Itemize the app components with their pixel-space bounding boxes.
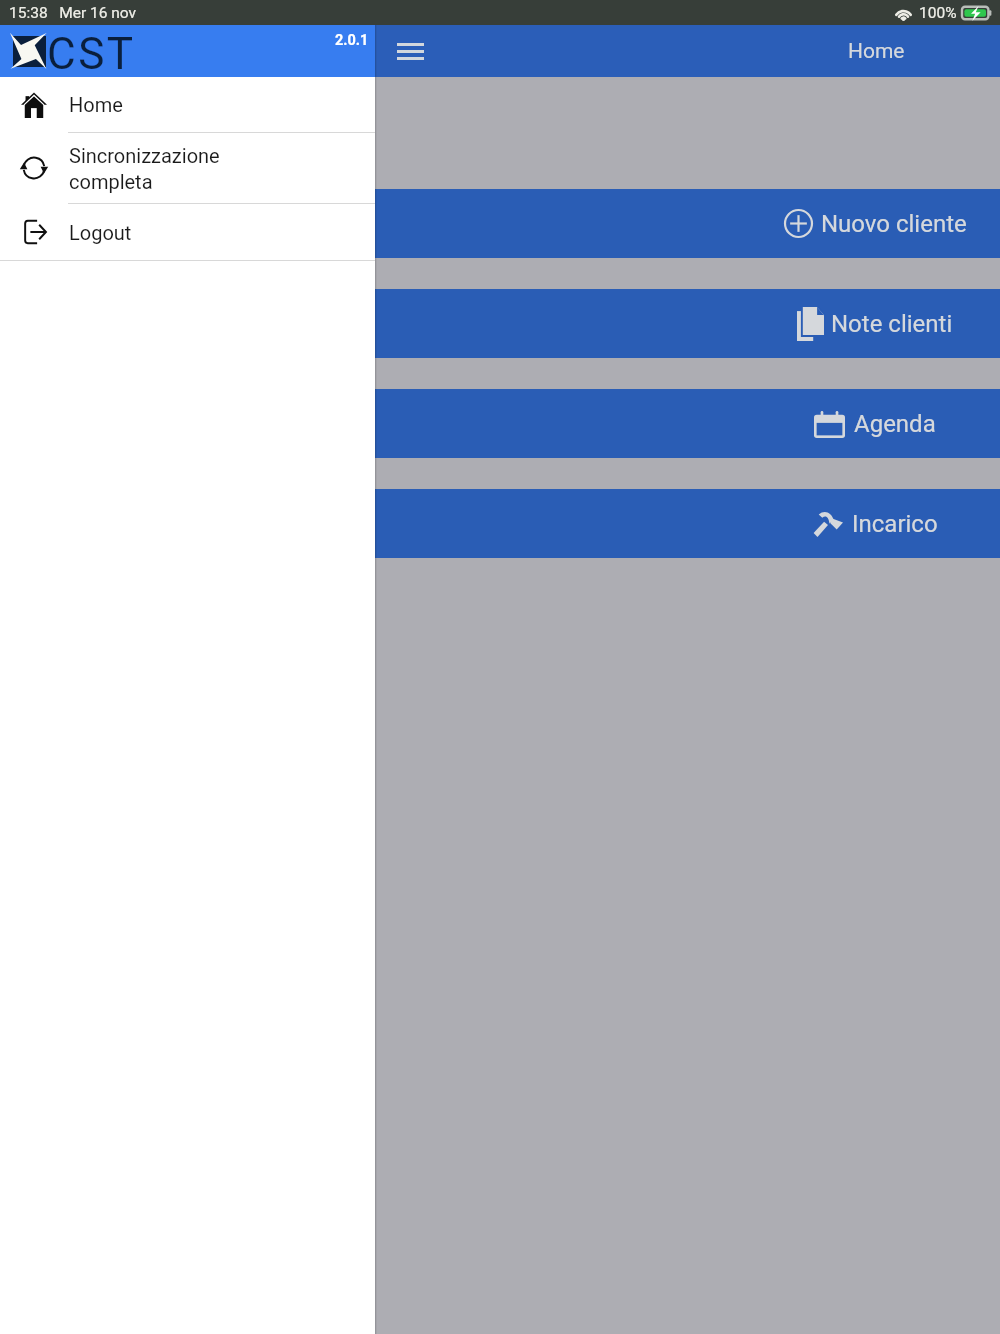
staticText: Sincronizzazione completa <box>69 144 220 193</box>
staticText: Agenda <box>854 410 936 438</box>
staticText: Logout <box>69 221 132 244</box>
button[interactable]: Note clienti <box>0 289 1000 358</box>
staticText: Home <box>848 39 905 64</box>
button[interactable]: Logout <box>0 204 375 260</box>
button[interactable]: Sincronizzazione completa <box>0 133 375 203</box>
button[interactable]: Open navigation drawer <box>384 25 436 77</box>
button[interactable]: Nuovo cliente <box>0 189 1000 258</box>
staticText: Home <box>69 93 123 116</box>
staticText: 15:38 Mer 16 nov <box>9 4 137 22</box>
button[interactable]: Home <box>0 77 375 132</box>
staticText: Note clienti <box>831 310 953 338</box>
staticText: Incarico <box>852 510 938 538</box>
staticText: CST <box>47 28 136 77</box>
button[interactable]: Agenda <box>0 389 1000 458</box>
button[interactable]: Incarico <box>0 489 1000 558</box>
staticText: 100% <box>919 4 957 22</box>
staticText: Nuovo cliente <box>821 210 967 238</box>
staticText: 2.0.1 <box>335 32 369 49</box>
